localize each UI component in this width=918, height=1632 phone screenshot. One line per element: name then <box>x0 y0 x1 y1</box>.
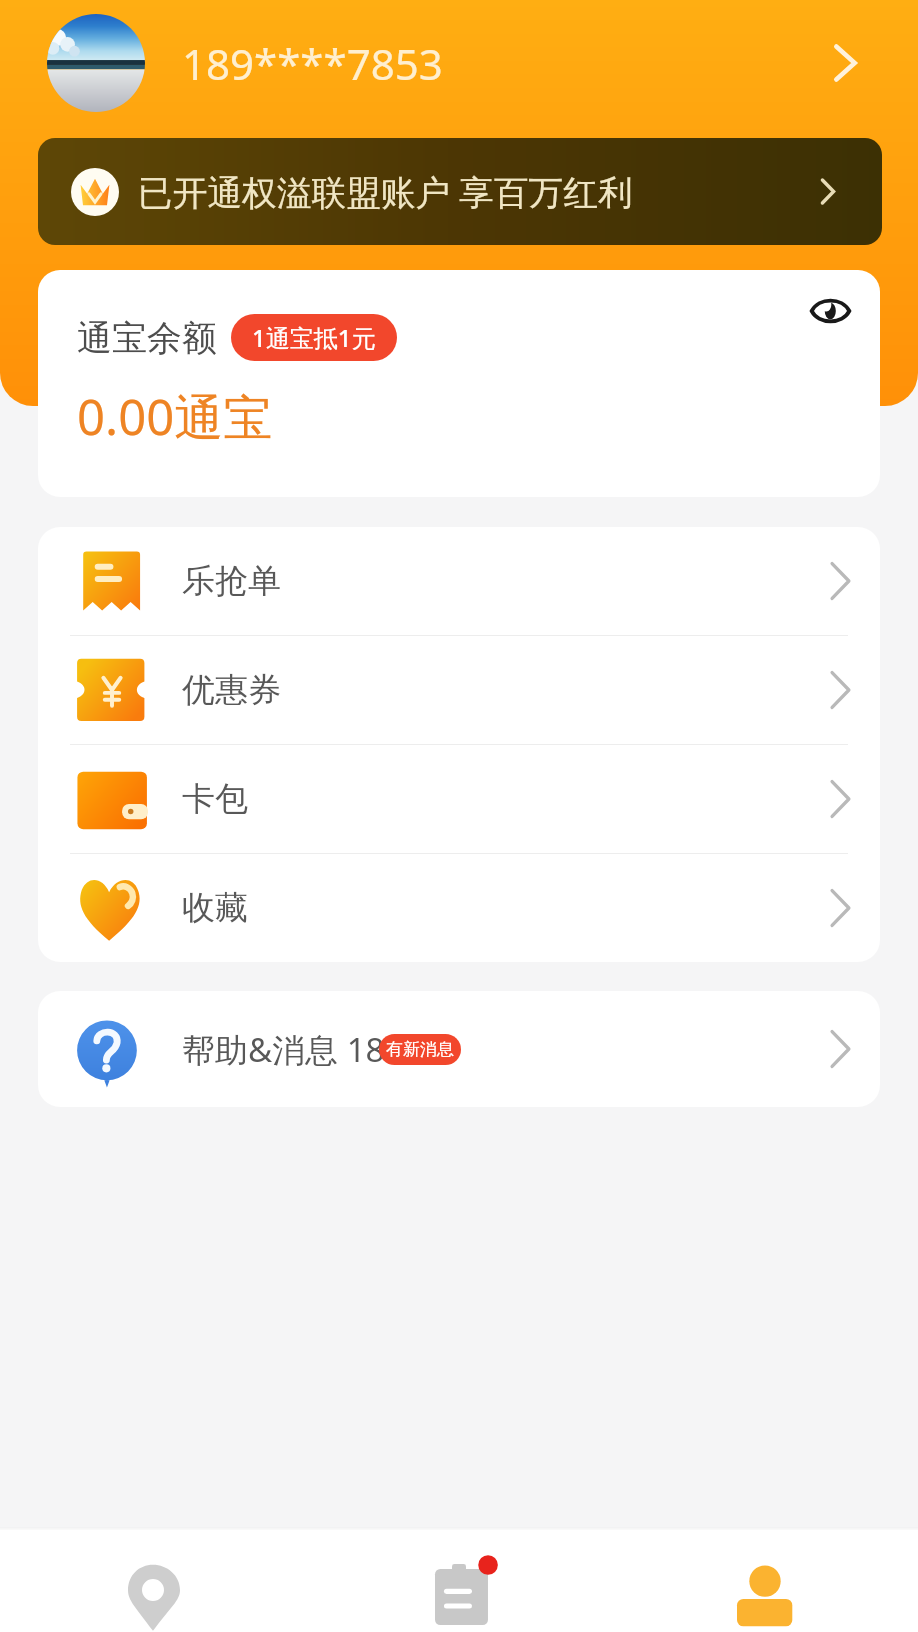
staticText: 1通宝抵1元 <box>252 321 376 354</box>
button[interactable]: Profile <box>612 1530 918 1632</box>
staticText: 卡包 <box>182 778 248 820</box>
staticText: 189****7853 <box>182 35 443 92</box>
button[interactable]: Orders <box>306 1530 612 1632</box>
button[interactable]: 189****7853 <box>47 0 857 126</box>
button[interactable]: Toggle balance visibility <box>804 285 856 337</box>
staticText: 收藏 <box>182 887 248 929</box>
button[interactable]: 收藏 <box>38 854 880 962</box>
staticText: 帮助&消息 18 <box>182 1027 385 1072</box>
staticText: 0.00通宝 <box>77 383 273 450</box>
button[interactable]: 优惠券 <box>38 636 880 744</box>
button[interactable]: 已开通权溢联盟账户 享百万红利 <box>38 138 882 245</box>
button[interactable]: 帮助&消息 18 <box>38 991 880 1107</box>
button[interactable]: 卡包 <box>38 745 880 853</box>
button[interactable]: 乐抢单 <box>38 527 880 635</box>
staticText: 乐抢单 <box>182 560 281 602</box>
staticText: 已开通权溢联盟账户 享百万红利 <box>138 168 633 215</box>
staticText: 优惠券 <box>182 669 281 711</box>
staticText: 通宝余额 <box>77 316 217 360</box>
staticText: 有新消息 <box>386 1039 454 1060</box>
button[interactable]: Nearby <box>0 1530 306 1632</box>
